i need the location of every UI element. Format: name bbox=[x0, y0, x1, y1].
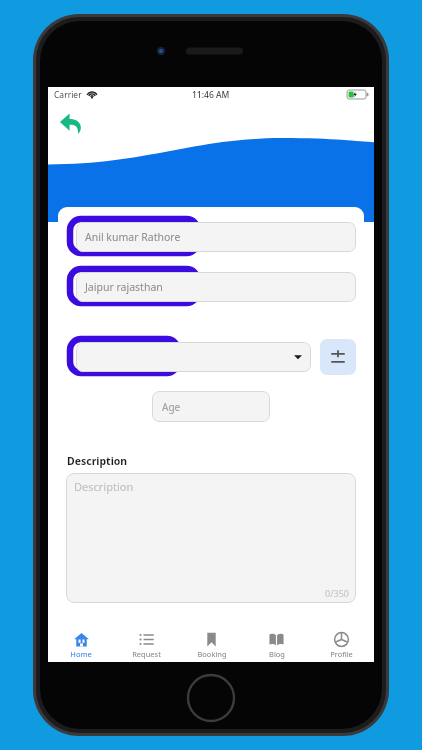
button[interactable]: Back bbox=[54, 106, 88, 140]
staticText: Profile bbox=[330, 649, 353, 659]
staticText: Booking bbox=[197, 649, 227, 659]
button[interactable] bbox=[66, 337, 311, 377]
button[interactable]: Description bbox=[66, 473, 356, 603]
button[interactable]: Jaipur rajasthan bbox=[66, 267, 356, 307]
button[interactable]: Add bbox=[320, 339, 356, 375]
staticText: Request bbox=[132, 649, 161, 659]
button[interactable]: Booking bbox=[179, 629, 244, 662]
staticText: Blog bbox=[269, 649, 285, 659]
staticText: Carrier bbox=[54, 89, 82, 101]
staticText: Jaipur rajasthan bbox=[85, 280, 163, 294]
staticText: 0/350 bbox=[325, 587, 349, 599]
staticText: Age bbox=[162, 400, 181, 414]
button[interactable]: Home bbox=[48, 629, 114, 662]
button[interactable]: Age bbox=[152, 391, 270, 422]
staticText: 11:46 AM bbox=[192, 89, 230, 101]
button[interactable]: Blog bbox=[244, 629, 309, 662]
staticText: Description bbox=[74, 479, 134, 494]
staticText: Anil kumar Rathore bbox=[85, 230, 181, 244]
button[interactable]: Anil kumar Rathore bbox=[66, 217, 356, 257]
button[interactable]: Request bbox=[114, 629, 179, 662]
staticText: Home bbox=[70, 649, 92, 659]
staticText: Description bbox=[67, 454, 128, 468]
button[interactable]: Profile bbox=[309, 629, 374, 662]
